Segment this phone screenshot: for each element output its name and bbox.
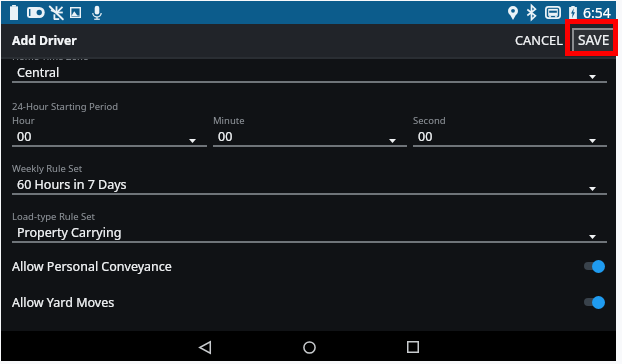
staticText: Weekly Rule Set — [12, 162, 83, 175]
button[interactable]: Home Time Zone — [12, 59, 607, 83]
button[interactable]: CANCEL — [506, 24, 572, 57]
staticText: Allow Yard Moves — [12, 294, 584, 311]
staticText: 24-Hour Starting Period — [12, 100, 119, 113]
staticText: 6:54 — [583, 3, 611, 22]
button[interactable]: Weekly Rule Set — [12, 162, 607, 195]
staticText: 00 — [218, 128, 233, 145]
button[interactable]: Recent apps — [393, 333, 433, 361]
button[interactable]: Load-type Rule Set — [12, 210, 607, 243]
button[interactable]: SAVE — [574, 30, 614, 53]
button[interactable]: Home — [289, 333, 329, 361]
staticText: Allow Personal Conveyance — [12, 258, 584, 275]
button[interactable]: Allow Personal Conveyance — [12, 248, 607, 284]
staticText: 00 — [17, 128, 32, 145]
button[interactable]: Back — [185, 333, 225, 361]
staticText: CANCEL — [515, 31, 563, 48]
button[interactable]: Hour — [12, 114, 207, 147]
staticText: 00 — [418, 128, 433, 145]
button[interactable]: Minute — [213, 114, 407, 147]
staticText: Property Carrying — [17, 224, 122, 241]
staticText: Home Time Zone — [12, 59, 89, 63]
staticText: Hour — [12, 114, 35, 127]
staticText: SAVE — [578, 30, 610, 49]
button[interactable]: Second — [413, 114, 607, 147]
staticText: Minute — [213, 114, 245, 127]
staticText: Second — [413, 114, 446, 127]
staticText: 60 Hours in 7 Days — [17, 176, 127, 193]
button[interactable]: Allow Yard Moves — [12, 284, 607, 320]
staticText: Add Driver — [12, 32, 77, 49]
staticText: Load-type Rule Set — [12, 210, 95, 223]
staticText: Central — [17, 64, 60, 81]
